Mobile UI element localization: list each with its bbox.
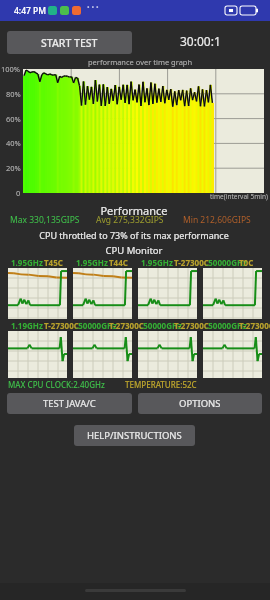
staticText: MAX CPU CLOCK:2.40GHz <box>8 379 105 390</box>
staticText: 0 <box>16 188 21 198</box>
staticText: • • • <box>87 3 99 13</box>
staticText: .50000GHz <box>206 257 247 268</box>
staticText: .50000GHz <box>206 320 247 331</box>
staticText: 80% <box>6 89 21 99</box>
staticText: 40% <box>6 138 21 148</box>
staticText: T-27300C <box>44 320 79 331</box>
staticText: START TEST <box>41 36 98 50</box>
staticText: 60% <box>6 114 21 124</box>
staticText: 100% <box>1 64 21 74</box>
staticText: T-27300C <box>174 257 209 268</box>
staticText: TEMPERATURE:52C <box>125 379 197 390</box>
staticText: Performance <box>0 203 269 218</box>
staticText: TEST JAVA/C <box>43 397 96 410</box>
staticText: HELP/INSTRUCTIONS <box>87 429 182 442</box>
button[interactable]: HELP/INSTRUCTIONS <box>74 425 195 446</box>
staticText: Avg 275,332GIPS <box>96 214 164 226</box>
staticText: T-27300C <box>174 320 209 331</box>
staticText: 1.95GHz <box>76 257 108 268</box>
button[interactable]: START TEST <box>7 31 132 54</box>
staticText: 1.95GHz <box>141 257 173 268</box>
staticText: 20% <box>6 163 21 173</box>
staticText: Min 212,606GIPS <box>183 214 251 226</box>
staticText: OPTIONS <box>179 397 221 410</box>
staticText: time(interval 5min) <box>210 192 268 201</box>
staticText: 4:47 PM <box>14 5 47 17</box>
staticText: T44C <box>109 257 128 268</box>
staticText: CPU Monitor <box>0 244 269 257</box>
button[interactable]: OPTIONS <box>138 393 262 414</box>
staticText: T-27300C <box>239 320 270 331</box>
staticText: CPU throttled to 73% of its max performa… <box>0 229 269 241</box>
staticText: performance over time graph <box>88 57 193 67</box>
staticText: 1.19GHz <box>11 320 43 331</box>
staticText: .50000GHz <box>76 320 117 331</box>
staticText: 30:00:1 <box>180 33 221 49</box>
staticText: .50000GHz <box>141 320 182 331</box>
staticText: T0C <box>239 257 254 268</box>
staticText: 1.95GHz <box>11 257 43 268</box>
staticText: T-27300C <box>109 320 144 331</box>
staticText: T45C <box>44 257 63 268</box>
staticText: Max 330,135GIPS <box>10 214 80 226</box>
button[interactable]: TEST JAVA/C <box>7 393 132 414</box>
